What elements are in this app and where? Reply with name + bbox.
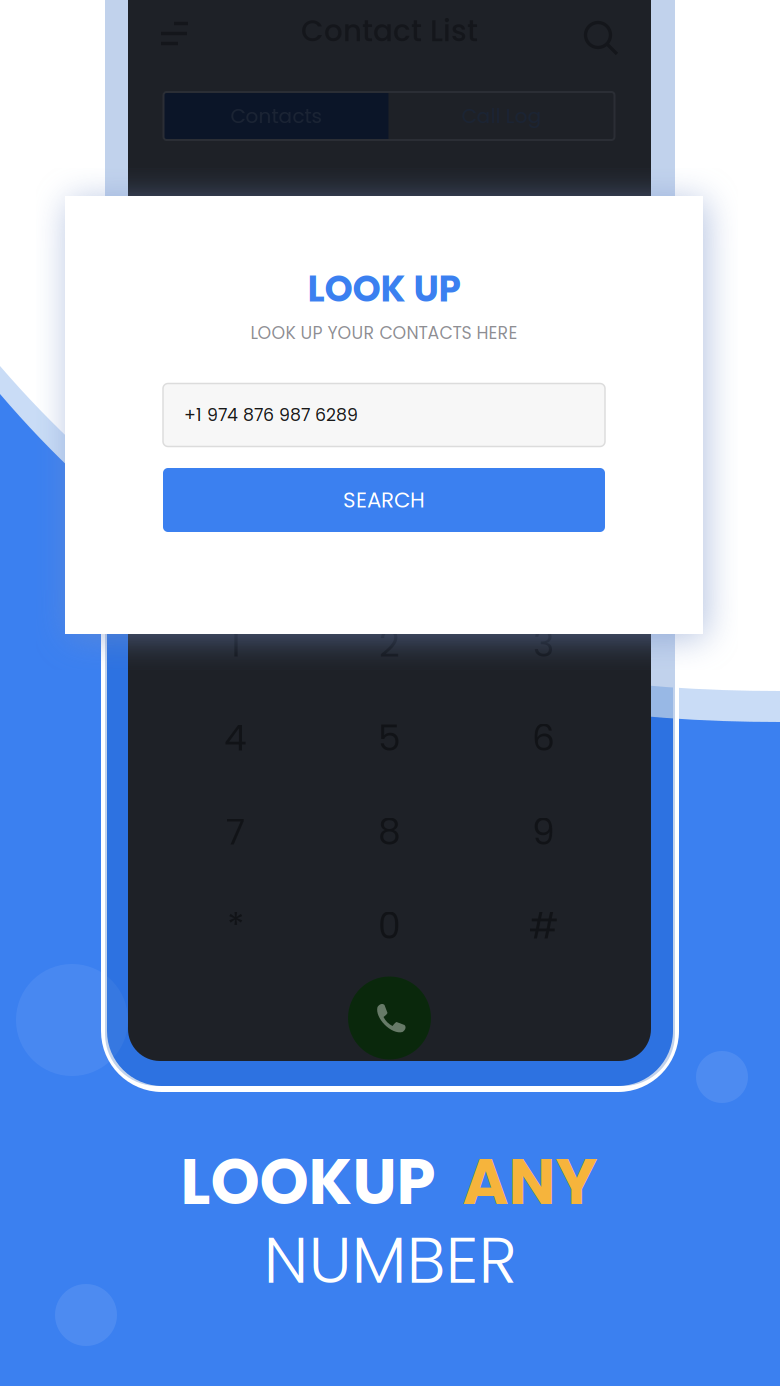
staticText: 1 [229, 619, 241, 669]
staticText: 9 [532, 807, 555, 857]
staticText: +1 974 876 987 6289 [184, 403, 358, 427]
button[interactable]: 1 [158, 597, 312, 691]
staticText: 3 [533, 619, 554, 669]
staticText: Call Log [461, 102, 541, 130]
staticText: 6 [532, 713, 555, 763]
staticText: # [528, 901, 558, 951]
staticText: 4 [224, 713, 247, 763]
staticText: ANY [462, 1138, 597, 1226]
staticText: NUMBER [263, 1214, 516, 1306]
staticText: Contact List [301, 10, 478, 52]
staticText: 5 [378, 713, 401, 763]
staticText: 7 [225, 807, 245, 857]
staticText: 2 [379, 619, 400, 669]
staticText: LOOK UP [307, 264, 460, 314]
button[interactable]: Contacts [163, 92, 388, 140]
staticText: 8 [378, 807, 401, 857]
button[interactable]: 2 [312, 597, 466, 691]
staticText: 0 [378, 901, 401, 951]
button[interactable]: Search [584, 21, 620, 57]
staticText: LOOK UP YOUR CONTACTS HERE [250, 321, 517, 345]
staticText: LOOKUP [180, 1138, 435, 1226]
staticText: * [227, 901, 244, 951]
button[interactable]: SEARCH [163, 468, 605, 532]
button[interactable]: Call [343, 972, 435, 1064]
button[interactable]: Menu [161, 21, 189, 46]
button[interactable]: Call Log [388, 92, 614, 140]
staticText: Contacts [230, 102, 321, 130]
staticText: SEARCH [343, 485, 425, 515]
button[interactable]: 3 [466, 597, 620, 691]
